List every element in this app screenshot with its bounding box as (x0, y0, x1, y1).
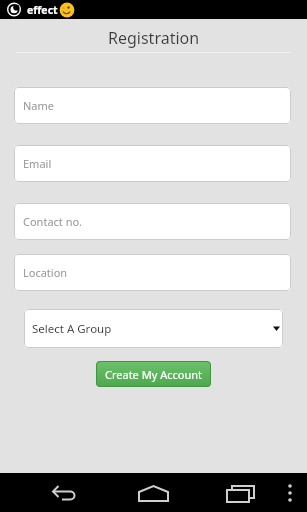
button[interactable]: Contact no. (14, 203, 291, 240)
staticText: Email (23, 156, 52, 171)
button[interactable]: Name (14, 87, 291, 124)
staticText: Location (23, 265, 68, 280)
staticText: effect (27, 3, 58, 17)
button[interactable] (128, 473, 178, 512)
button[interactable] (38, 473, 88, 512)
staticText: Create My Account (105, 367, 202, 382)
button[interactable]: Email (14, 145, 291, 182)
button[interactable]: Location (14, 254, 291, 291)
button[interactable] (278, 473, 302, 512)
button[interactable]: Create My Account (96, 361, 211, 387)
staticText: Registration (108, 27, 200, 49)
button[interactable]: Select A Group (24, 309, 283, 348)
staticText: Name (23, 98, 55, 113)
staticText: Select A Group (32, 321, 112, 337)
staticText: Contact no. (23, 214, 83, 229)
button[interactable] (215, 473, 265, 512)
